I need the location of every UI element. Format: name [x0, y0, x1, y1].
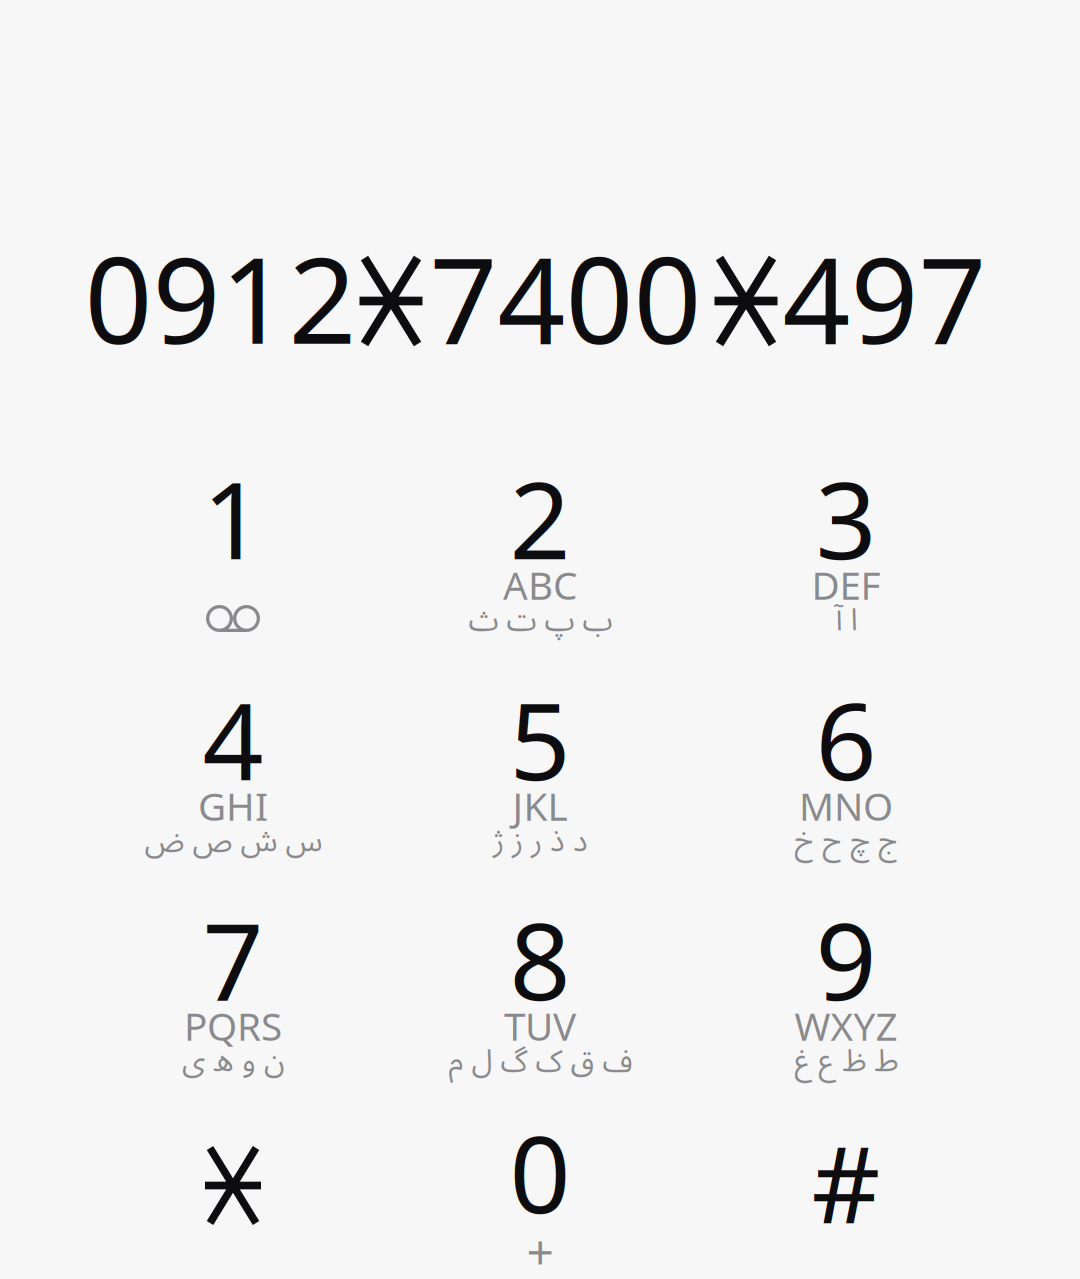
staticText: # [811, 1111, 880, 1253]
staticText: 7400 [429, 219, 701, 377]
staticText: 8 [509, 888, 570, 1030]
staticText: د ذ ر ز ژ [492, 809, 587, 874]
staticText: 3 [815, 447, 876, 589]
staticText: 9 [815, 888, 876, 1030]
staticText: WXYZ [794, 1000, 897, 1051]
staticText: 0912 [84, 219, 356, 377]
staticText: ف ق ک گ ل م [448, 1029, 632, 1094]
button[interactable]: 2 ABC [390, 447, 690, 661]
staticText: 2 [509, 447, 570, 589]
staticText: س ش ص ض [144, 809, 322, 874]
button[interactable]: 9 WXYZ [696, 888, 996, 1102]
staticText: ا آ [835, 588, 857, 653]
staticText: + [526, 1219, 553, 1279]
staticText: PQRS [184, 1000, 282, 1051]
button[interactable]: 5 JKL [390, 668, 690, 882]
button[interactable]: Star [83, 1101, 383, 1279]
staticText: TUV [504, 1000, 576, 1051]
staticText: JKL [512, 780, 567, 831]
staticText: GHI [198, 780, 268, 831]
button[interactable]: 3 DEF [696, 447, 996, 661]
staticText: 6 [815, 668, 876, 810]
staticText: 4 [202, 668, 263, 810]
button[interactable]: 0 plus [390, 1101, 690, 1279]
staticText: 0 [509, 1101, 570, 1243]
staticText: ج چ ح خ [794, 809, 898, 874]
staticText: MNO [799, 780, 893, 831]
staticText: ABC [503, 559, 577, 610]
staticText: DEF [811, 559, 880, 610]
button[interactable]: Pound [696, 1101, 996, 1279]
button[interactable]: 4 GHI [83, 668, 383, 882]
button[interactable]: 8 TUV [390, 888, 690, 1102]
staticText: ن و ه ی [181, 1029, 284, 1094]
staticText: 5 [509, 668, 570, 810]
staticText: 1 [202, 447, 263, 589]
staticText: 7 [202, 888, 263, 1030]
button[interactable]: 7 PQRS [83, 888, 383, 1102]
button[interactable]: 1 voicemail [83, 447, 383, 661]
staticText: ط ظ ع غ [794, 1029, 898, 1094]
staticText: ب پ ت ث [468, 588, 612, 653]
button[interactable]: 6 MNO [696, 668, 996, 882]
staticText: 497 [782, 219, 986, 377]
